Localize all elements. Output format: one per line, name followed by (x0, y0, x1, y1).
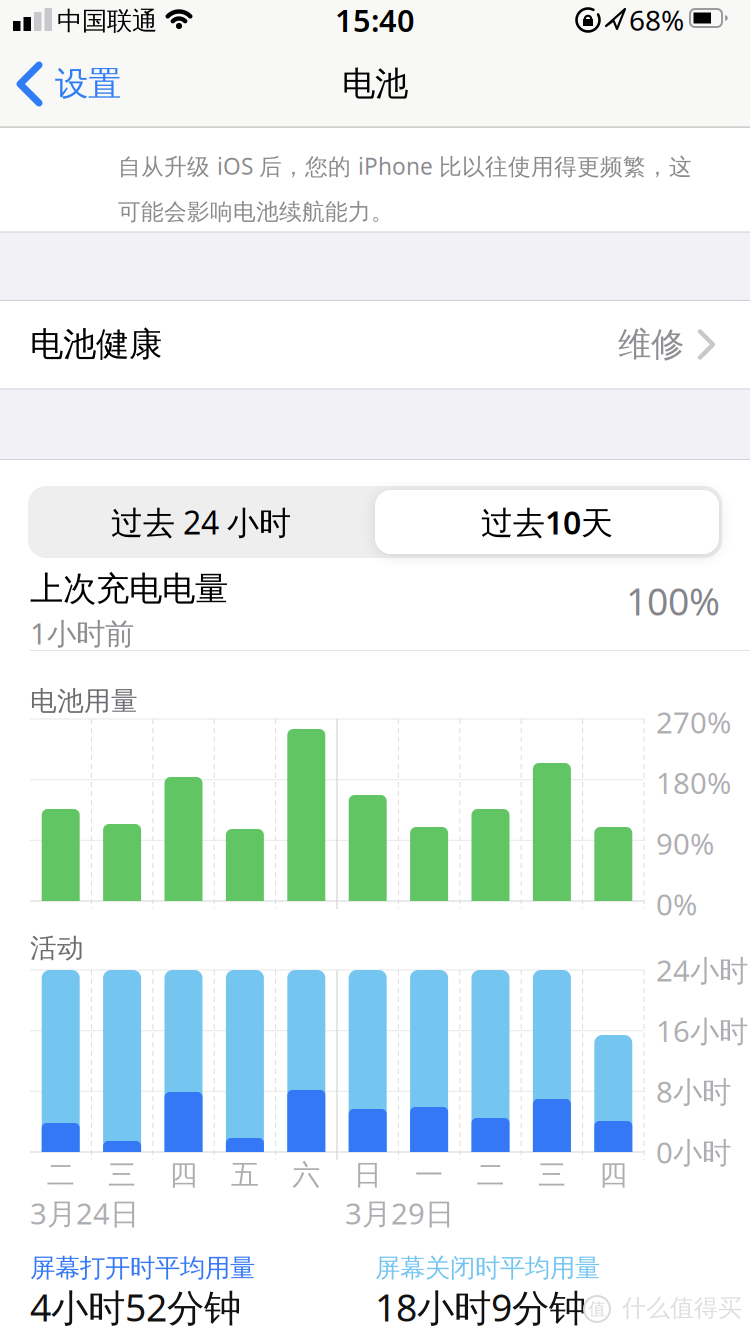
staticText: 8小时 (656, 1072, 731, 1111)
button[interactable]: 过去10天 (375, 490, 719, 554)
staticText: 100% (626, 576, 720, 626)
staticText: 电池健康 (30, 324, 162, 365)
staticText: 屏幕关闭时平均用量 (375, 1252, 600, 1283)
staticText: 过去10天 (481, 501, 613, 543)
staticText: 值 (588, 1298, 605, 1320)
staticText: 4小时52分钟 (30, 1282, 241, 1332)
staticText: 电池用量 (30, 685, 138, 717)
staticText: 上次充电电量 (30, 568, 228, 609)
staticText: 3月24日 (30, 1193, 139, 1232)
staticText: 1小时前 (30, 613, 134, 652)
button[interactable]: 过去 24 小时 (31, 489, 371, 555)
staticText: 二 (476, 1158, 504, 1192)
staticText: 二 (47, 1158, 75, 1192)
staticText: 180% (656, 763, 731, 802)
staticText: 270% (656, 702, 731, 741)
staticText: 三 (108, 1158, 136, 1192)
staticText: 15:40 (335, 0, 415, 40)
staticText: 18小时9分钟 (375, 1282, 586, 1332)
staticText: 设置 (55, 63, 121, 104)
staticText: 一 (415, 1158, 443, 1192)
staticText: 活动 (30, 932, 84, 964)
staticText: 维修 (618, 324, 684, 365)
staticText: 3月29日 (345, 1193, 454, 1232)
staticText: 三 (538, 1158, 566, 1192)
staticText: 电池 (342, 63, 408, 104)
staticText: 屏幕打开时平均用量 (30, 1252, 255, 1283)
staticText: 可能会影响电池续航能力。 (118, 198, 394, 226)
staticText: 24小时 (656, 950, 748, 989)
staticText: 0小时 (656, 1132, 731, 1171)
staticText: 0% (656, 884, 697, 923)
staticText: 四 (599, 1158, 627, 1192)
staticText: 过去 24 小时 (111, 501, 291, 543)
staticText: 六 (292, 1158, 320, 1192)
staticText: 自从升级 iOS 后，您的 iPhone 比以往使用得更频繁，这 (118, 151, 692, 181)
button[interactable]: 电池健康 (0, 301, 750, 388)
staticText: 什么值得买 (622, 1293, 742, 1323)
button[interactable]: 返回设置 (15, 54, 121, 114)
staticText: 68% (629, 1, 684, 39)
staticText: 五 (231, 1158, 259, 1192)
staticText: 中国联通 (57, 5, 157, 36)
staticText: 16小时 (656, 1011, 748, 1050)
staticText: 四 (169, 1158, 197, 1192)
staticText: 90% (656, 824, 714, 863)
staticText: 日 (354, 1158, 382, 1192)
